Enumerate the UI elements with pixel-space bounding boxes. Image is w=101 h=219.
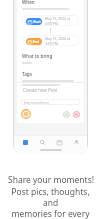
staticText: Share your moments!	[8, 174, 94, 186]
staticText: End	[33, 39, 40, 44]
button[interactable]: Close	[73, 111, 80, 118]
button[interactable]: Events	[54, 137, 64, 147]
staticText: When	[22, 0, 35, 5]
staticText: May 15, 2024 at 3:30 PM	[45, 16, 75, 26]
button[interactable]: Profile	[71, 137, 81, 147]
staticText: Say something	[24, 100, 49, 105]
staticText: Start	[33, 19, 41, 24]
staticText: May 15, 2024 at 3:30 PM	[45, 36, 75, 46]
staticText: Tags	[22, 71, 32, 77]
staticText: Post pics, thoughts, and	[5, 186, 96, 208]
button[interactable]: Home	[20, 137, 30, 147]
staticText: memories for every event	[5, 208, 96, 219]
staticText: What to bring	[22, 53, 53, 59]
button[interactable]: Start	[22, 15, 79, 26]
button[interactable]: Add photo	[21, 109, 31, 119]
staticText: Create new Post	[23, 87, 58, 93]
button[interactable]: Say something	[21, 99, 80, 105]
button[interactable]: End	[22, 35, 79, 46]
button[interactable]: Search	[37, 137, 47, 147]
button[interactable]: Record	[63, 111, 70, 118]
